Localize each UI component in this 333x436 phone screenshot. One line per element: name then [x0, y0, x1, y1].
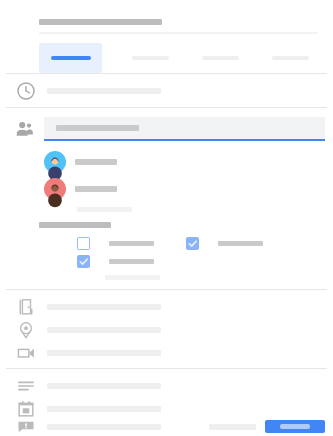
button[interactable] [132, 43, 169, 73]
button[interactable] [39, 43, 102, 73]
button[interactable] [272, 43, 309, 73]
button[interactable]: Calendar [6, 397, 327, 420]
other: Video conferencing [17, 344, 35, 362]
button[interactable] [77, 255, 154, 268]
button[interactable]: Time [6, 74, 327, 107]
button[interactable]: Description [6, 374, 327, 397]
button[interactable]: Video conferencing [6, 341, 327, 364]
other: Guests [12, 117, 38, 140]
other: Notification [14, 420, 38, 433]
button[interactable] [77, 237, 90, 250]
button[interactable] [6, 178, 327, 200]
button[interactable] [6, 151, 327, 173]
button[interactable] [202, 43, 239, 73]
other: Room [17, 298, 35, 316]
button[interactable] [77, 237, 154, 250]
other: Description [17, 377, 35, 395]
button[interactable] [186, 237, 199, 250]
button[interactable] [44, 117, 325, 139]
other: Calendar [17, 400, 35, 418]
button[interactable]: Location [6, 318, 327, 341]
other: Location [17, 321, 35, 339]
button[interactable] [265, 420, 325, 433]
button[interactable]: Room [6, 295, 327, 318]
button[interactable] [186, 237, 263, 250]
button[interactable] [77, 255, 90, 268]
other: Time [14, 82, 38, 100]
